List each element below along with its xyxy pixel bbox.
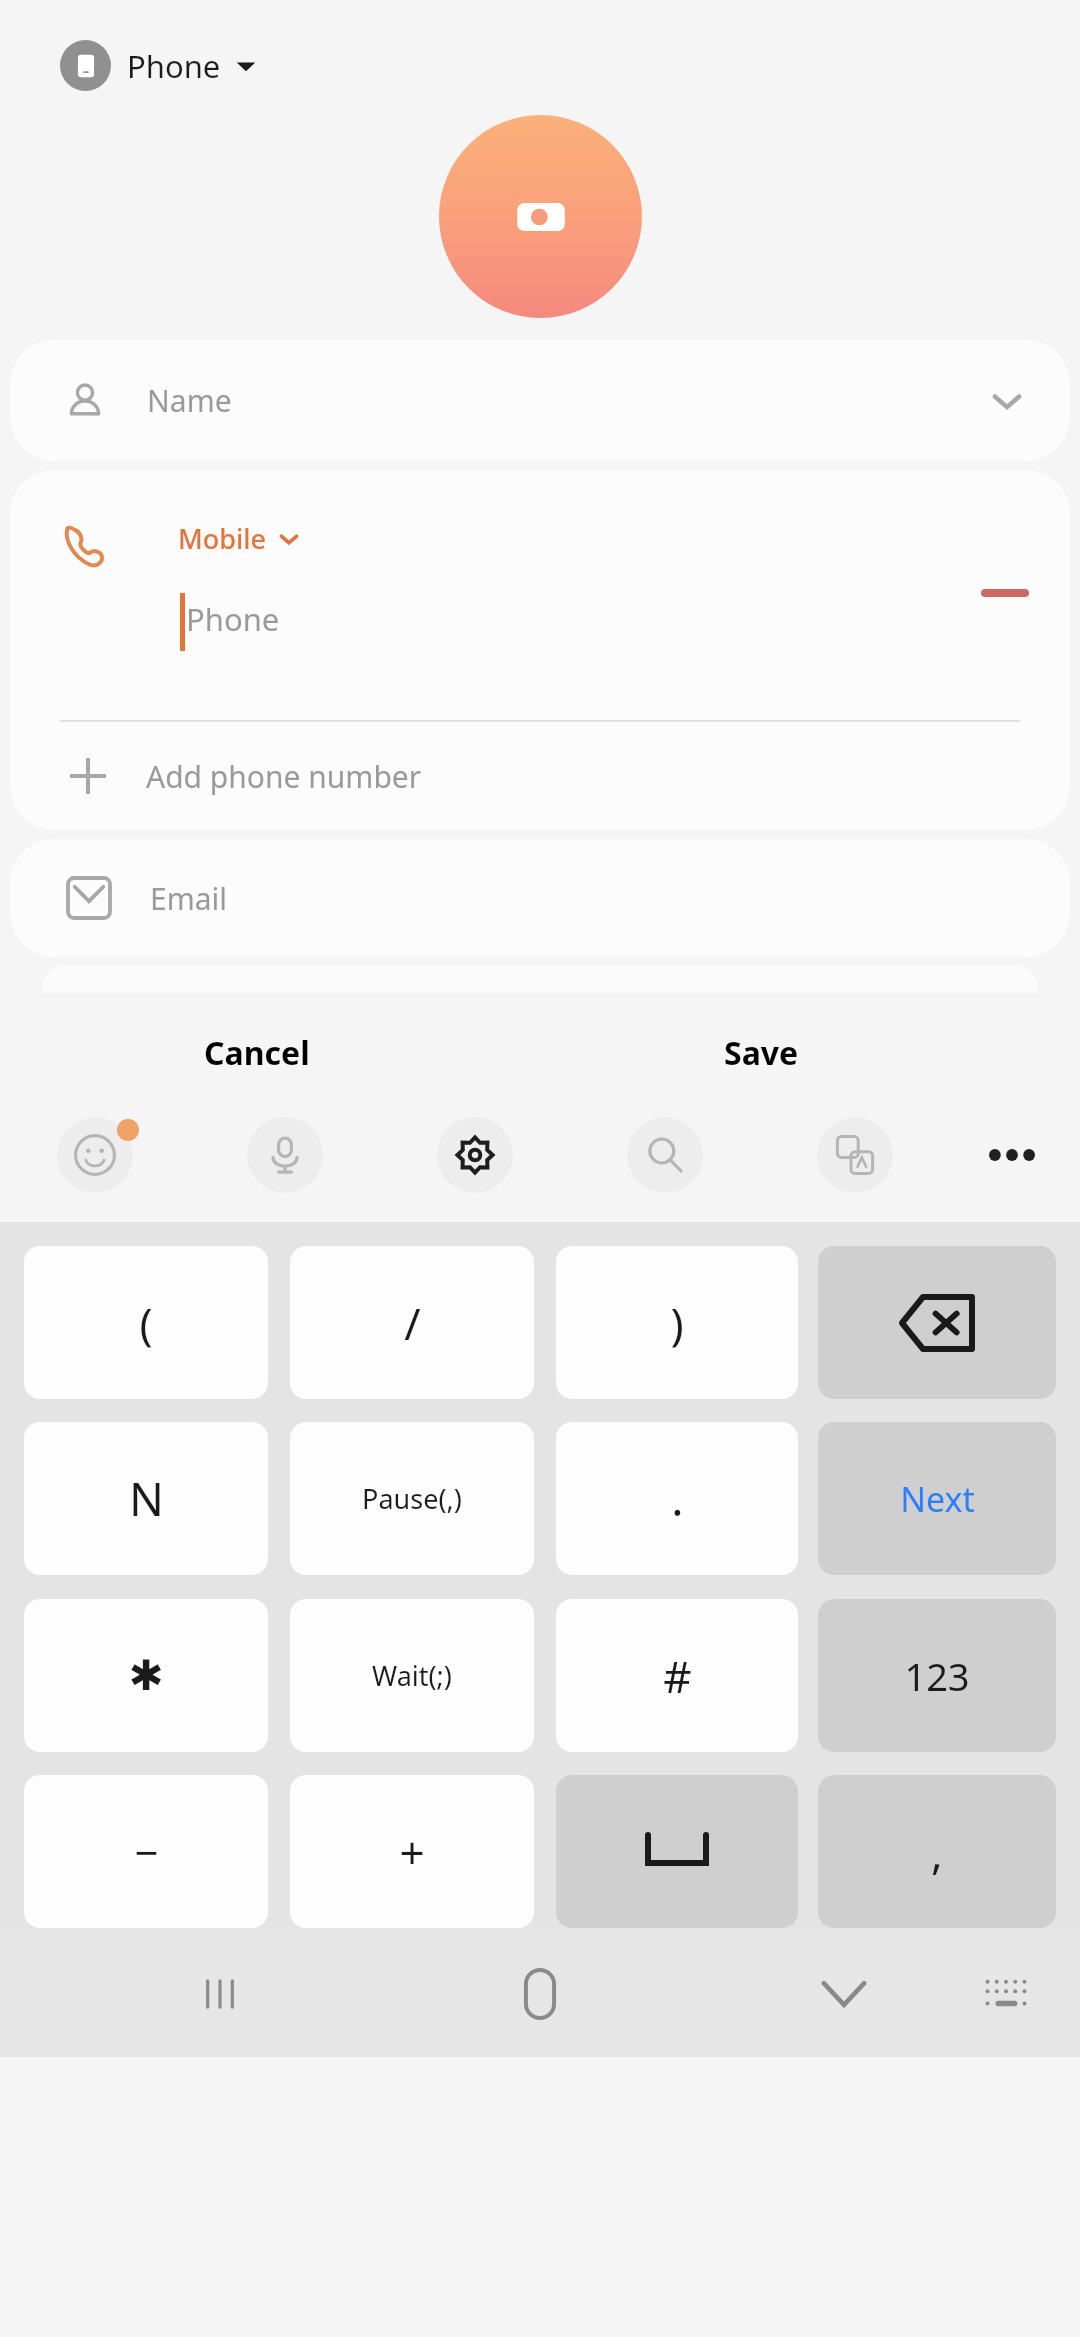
staticText: Phone (127, 45, 221, 87)
staticText: Mobile (178, 520, 267, 557)
button[interactable]: More options (976, 1119, 1048, 1191)
button[interactable]: Home (498, 1952, 582, 2036)
button[interactable]: + (290, 1775, 534, 1928)
button[interactable]: / (290, 1246, 534, 1399)
button[interactable]: Search (627, 1117, 703, 1193)
button[interactable]: Hide keyboard (802, 1952, 886, 2036)
button[interactable]: Add phone number (10, 722, 1070, 830)
button[interactable]: N (24, 1422, 268, 1575)
staticText: + (399, 1822, 425, 1882)
button[interactable]: Email (10, 839, 1070, 957)
button[interactable]: Voice input (247, 1117, 323, 1193)
button[interactable]: ✱ (24, 1599, 268, 1752)
staticText: Email (150, 878, 228, 919)
button[interactable]: Cancel (180, 1023, 334, 1083)
staticText: Add phone number (146, 756, 422, 797)
button[interactable]: Save (700, 1023, 823, 1083)
staticText: 123 (904, 1650, 970, 1702)
staticText: Phone (186, 598, 280, 640)
button[interactable]: Emoji (57, 1117, 133, 1193)
staticText: − (134, 1823, 159, 1880)
staticText: Wait(;) (372, 1657, 452, 1694)
button[interactable]: . (556, 1422, 798, 1575)
button[interactable]: Mobile (10, 470, 1070, 722)
button[interactable]: Phone (60, 40, 257, 91)
staticText: ✱ (128, 1651, 164, 1700)
button[interactable]: Name (10, 340, 1070, 461)
button[interactable]: Space (556, 1775, 798, 1928)
staticText: Pause(,) (362, 1480, 462, 1517)
button[interactable]: Next (818, 1422, 1056, 1575)
staticText: . (671, 1467, 684, 1530)
staticText: Cancel (204, 1031, 310, 1075)
button[interactable]: − (24, 1775, 268, 1928)
button[interactable]: Settings (437, 1117, 513, 1193)
button[interactable]: Recents (178, 1952, 262, 2036)
staticText: Save (724, 1031, 799, 1075)
button[interactable]: , (818, 1775, 1056, 1928)
staticText: ) (670, 1293, 684, 1353)
staticText: / (404, 1293, 421, 1353)
button[interactable]: ( (24, 1246, 268, 1399)
button[interactable]: Wait(;) (290, 1599, 534, 1752)
staticText: , (931, 1822, 943, 1882)
staticText: Name (147, 380, 232, 421)
button[interactable]: ) (556, 1246, 798, 1399)
button[interactable]: Backspace (818, 1246, 1056, 1399)
button[interactable]: Switch keyboard (964, 1952, 1048, 2036)
staticText: ( (139, 1293, 153, 1353)
button[interactable]: Remove phone number (968, 558, 1042, 628)
staticText: Next (900, 1476, 975, 1522)
staticText: # (663, 1646, 692, 1706)
staticText: N (129, 1467, 164, 1530)
button[interactable]: Translate (817, 1117, 893, 1193)
button[interactable]: Add contact photo (439, 115, 642, 318)
button[interactable]: # (556, 1599, 798, 1752)
button[interactable]: 123 (818, 1599, 1056, 1752)
button[interactable]: Pause(,) (290, 1422, 534, 1575)
